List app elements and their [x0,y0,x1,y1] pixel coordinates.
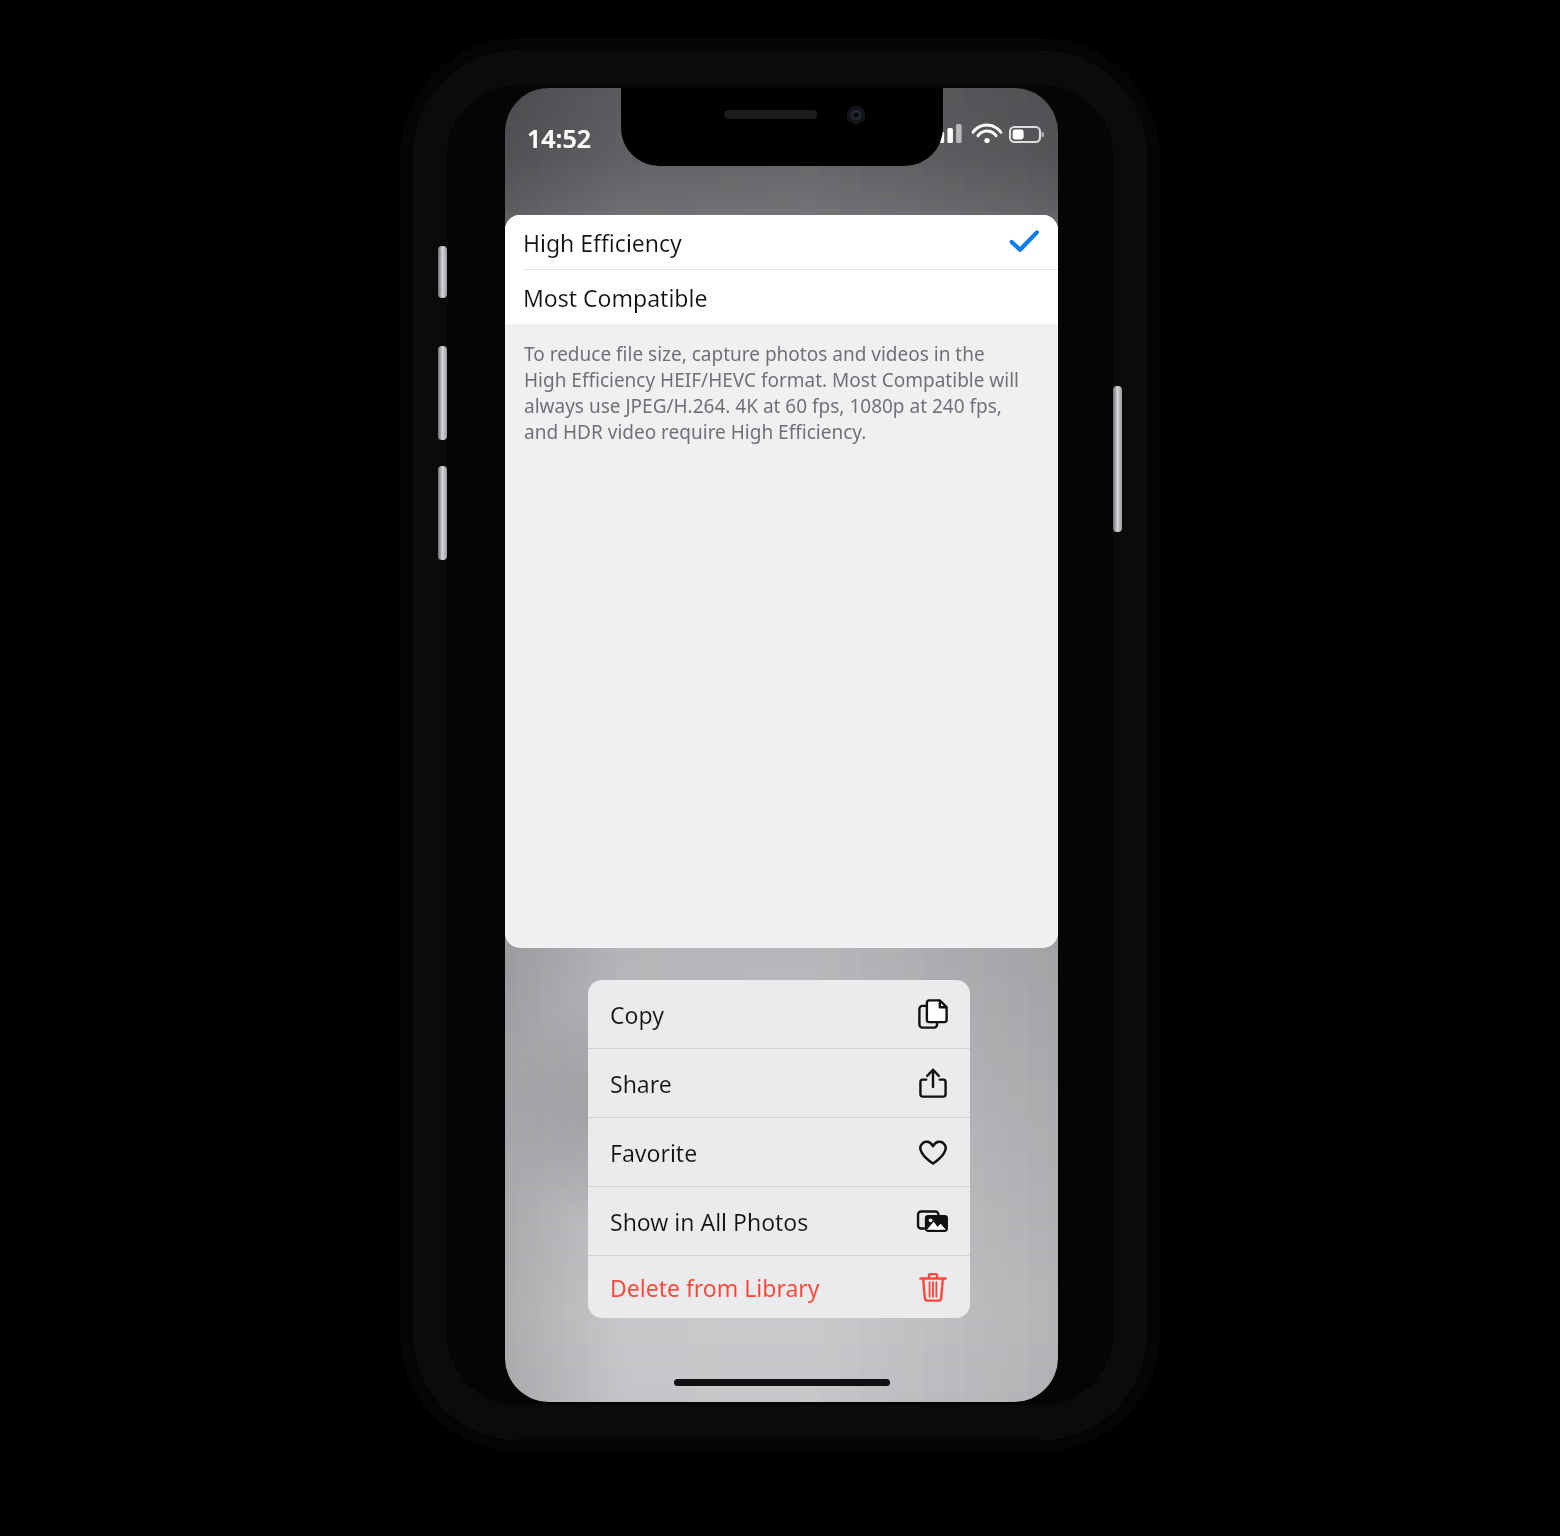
button[interactable]: Favorite [588,1118,970,1186]
staticText: Show in All Photos [610,1206,809,1237]
staticText: Delete from Library [610,1272,820,1303]
button[interactable]: Share [588,1049,970,1117]
staticText: 14:52 [527,121,592,155]
staticText: Share [610,1068,672,1099]
button[interactable]: High Efficiency [505,215,1058,269]
button[interactable]: Show in All Photos [588,1187,970,1255]
button[interactable]: Copy [588,980,970,1048]
button[interactable]: Delete from Library [588,1256,970,1318]
staticText: High Efficiency [523,227,682,258]
staticText: Most Compatible [523,282,708,313]
staticText: Copy [610,999,664,1030]
staticText: To reduce file size, capture photos and … [524,341,1028,445]
staticText: Favorite [610,1137,698,1168]
button[interactable]: Most Compatible [505,270,1058,324]
